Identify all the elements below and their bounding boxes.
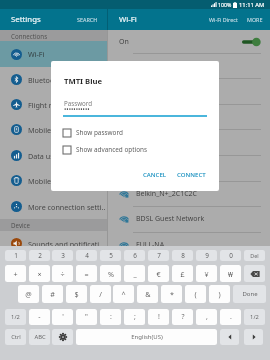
staticText: Show password [76, 128, 123, 137]
button[interactable]: MORE [244, 11, 266, 28]
button[interactable]: 9 [196, 250, 217, 261]
button[interactable]: CANCEL [140, 170, 170, 178]
button[interactable]: 4 [76, 250, 97, 261]
button[interactable]: right [244, 329, 263, 345]
button[interactable]: + [5, 265, 26, 282]
staticText: 1/2 [11, 313, 20, 321]
button[interactable]: Flight mode [0, 92, 107, 117]
staticText: × [37, 269, 42, 279]
button[interactable]: Sounds and notificati.. [0, 231, 107, 256]
button[interactable]: Del [244, 250, 265, 261]
button[interactable]: Belkin_N+_2C1C2C [108, 181, 270, 207]
button[interactable]: ' [52, 309, 73, 325]
button[interactable]: HOME-8A32 [108, 104, 270, 130]
button[interactable]: - [29, 309, 50, 325]
button[interactable]: On [108, 30, 270, 53]
staticText: Belkin_N+_2C1C2C [136, 189, 197, 199]
button[interactable]: Wi-Fi Direct [206, 11, 241, 28]
staticText: MORE [247, 16, 263, 23]
button[interactable]: left [220, 329, 239, 345]
button[interactable]: × [29, 265, 50, 282]
button[interactable]: Mobile hotspot [0, 117, 107, 142]
button[interactable]: Data usage [0, 143, 107, 168]
staticText: Wi-Fi [28, 49, 45, 59]
button[interactable]: Show password [51, 126, 219, 139]
button[interactable]: 3 [52, 250, 73, 261]
button[interactable]: £ [172, 265, 193, 282]
button[interactable]: : [100, 309, 121, 325]
button[interactable]: Lacey [108, 53, 270, 79]
button[interactable]: ! [148, 309, 169, 325]
staticText: 8 [181, 251, 185, 260]
staticText: * [170, 289, 174, 299]
staticText: CONNECT [177, 170, 206, 178]
button[interactable]: # [42, 285, 63, 303]
button[interactable]: ATT2wPa9Ib [108, 129, 270, 155]
staticText: 0 [229, 251, 233, 260]
staticText: ABC [34, 333, 46, 341]
button[interactable]: @ [18, 285, 39, 303]
button[interactable]: ? [172, 309, 193, 325]
button[interactable]: ( [185, 285, 206, 303]
button[interactable]: ₩ [220, 265, 241, 282]
staticText: 9 [205, 251, 209, 260]
staticText: Done [242, 290, 258, 298]
button[interactable]: _ [124, 265, 145, 282]
staticText: 1 [14, 251, 18, 260]
button[interactable]: DIRECT-K9-HP [108, 155, 270, 181]
button[interactable]: " [76, 309, 97, 325]
button[interactable]: FULL-NA [108, 232, 270, 258]
button[interactable]: % [100, 265, 121, 282]
button[interactable]: 7 [148, 250, 169, 261]
button[interactable]: Wi-Fi toggle [242, 37, 262, 47]
button[interactable]: 1/2 [244, 309, 265, 325]
button[interactable]: Ctrl [5, 329, 26, 345]
staticText: " [85, 312, 88, 322]
button[interactable]: ) [209, 285, 230, 303]
button[interactable]: 6 [124, 250, 145, 261]
button[interactable]: Mellow_Na_2K2M2K [108, 78, 270, 104]
button[interactable]: BDSL Guest Network [108, 206, 270, 232]
button[interactable]: 1 [5, 250, 26, 261]
staticText: ( [194, 289, 197, 299]
button[interactable]: , [196, 309, 217, 325]
button[interactable]: Wi-Fi [0, 41, 107, 67]
staticText: Del [250, 252, 259, 259]
staticText: ! [158, 312, 160, 322]
staticText: , [206, 312, 208, 322]
button[interactable]: 0 [220, 250, 241, 261]
button[interactable]: * [161, 285, 182, 303]
button[interactable]: More connection setti.. [0, 194, 107, 219]
button[interactable]: 8 [172, 250, 193, 261]
button[interactable]: Done [233, 285, 266, 303]
button[interactable]: ; [124, 309, 145, 325]
button[interactable]: Show advanced options [51, 143, 219, 156]
button[interactable]: backspace [244, 265, 265, 282]
button[interactable]: ÷ [52, 265, 73, 282]
staticText: Mobile hotspot [28, 125, 80, 135]
button[interactable]: / [90, 285, 111, 303]
button[interactable]: ABC [29, 329, 50, 345]
button[interactable]: settings [52, 329, 73, 345]
button[interactable]: 5 [100, 250, 121, 261]
button[interactable]: Bluetooth [0, 67, 107, 92]
button[interactable]: English(US) [76, 329, 217, 345]
button[interactable]: $ [66, 285, 87, 303]
button[interactable]: ¥ [196, 265, 217, 282]
button[interactable]: € [148, 265, 169, 282]
staticText: ? [181, 312, 185, 322]
button[interactable]: = [76, 265, 97, 282]
button[interactable]: . [220, 309, 241, 325]
button[interactable]: 1/2 [5, 309, 26, 325]
button[interactable]: Mobile networks [0, 168, 107, 193]
staticText: Wi-Fi [119, 14, 137, 25]
staticText: Settings [11, 14, 41, 25]
button[interactable]: CONNECT [174, 170, 209, 178]
button[interactable]: SEARCH [72, 11, 103, 28]
staticText: ÷ [60, 269, 65, 279]
button[interactable]: 2 [29, 250, 50, 261]
button[interactable]: & [137, 285, 158, 303]
button[interactable]: ^ [113, 285, 134, 303]
staticText: $ [74, 289, 79, 299]
